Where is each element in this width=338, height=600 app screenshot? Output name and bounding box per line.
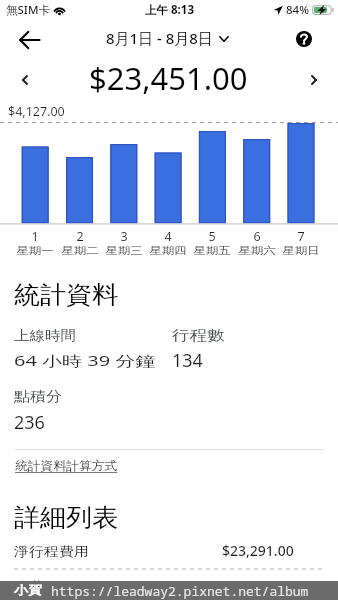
staticText: 134 — [172, 348, 203, 373]
staticText: 8月1日 - 8月8日 — [106, 28, 213, 48]
staticText: 星期一 — [16, 245, 54, 257]
staticText: 小費 — [14, 579, 44, 596]
staticText: 星期二 — [61, 245, 99, 257]
staticText: 星期六 — [238, 245, 276, 257]
staticText: 64 小時 39 分鐘 — [14, 351, 156, 370]
staticText: 6 — [253, 228, 261, 245]
staticText: 星期五 — [193, 245, 231, 257]
staticText: 詳細列表 — [14, 502, 118, 533]
staticText: 236 — [14, 410, 45, 435]
staticText: 無SIM卡 — [6, 2, 50, 18]
staticText: 1 — [31, 228, 39, 245]
staticText: 行程數 — [172, 326, 225, 344]
staticText: $23,291.00 — [222, 541, 294, 560]
staticText: $4,127.00 — [8, 103, 65, 120]
staticText: 淨行程費用 — [14, 544, 89, 561]
button[interactable]: Back — [11, 22, 47, 58]
staticText: 2 — [76, 228, 84, 245]
staticText: 上午 8:13 — [145, 2, 194, 18]
staticText: 84% — [286, 2, 309, 18]
staticText: 統計資料 — [14, 280, 118, 311]
button[interactable]: Help — [289, 24, 319, 54]
button[interactable]: Next week — [301, 67, 327, 93]
staticText: $23,451.00 — [89, 57, 248, 95]
staticText: 3 — [120, 228, 128, 245]
staticText: 星期四 — [149, 245, 187, 257]
staticText: $160.00 — [247, 578, 299, 597]
staticText: https://leadway2.pixnet.net/album — [51, 582, 309, 600]
staticText: 統計資料計算方式 — [15, 458, 118, 474]
staticText: 點積分 — [14, 388, 62, 406]
staticText: 4 — [164, 228, 172, 245]
staticText: 7 — [297, 228, 305, 245]
staticText: 星期日 — [282, 245, 320, 257]
staticText: 小賀 — [14, 583, 42, 599]
staticText: 星期三 — [105, 245, 143, 257]
button[interactable]: 8月1日 - 8月8日 — [106, 28, 229, 48]
staticText: 上線時間 — [14, 327, 76, 345]
button[interactable]: 統計資料計算方式 — [15, 458, 118, 474]
button[interactable]: Previous week — [12, 67, 38, 93]
staticText: 5 — [208, 228, 216, 245]
